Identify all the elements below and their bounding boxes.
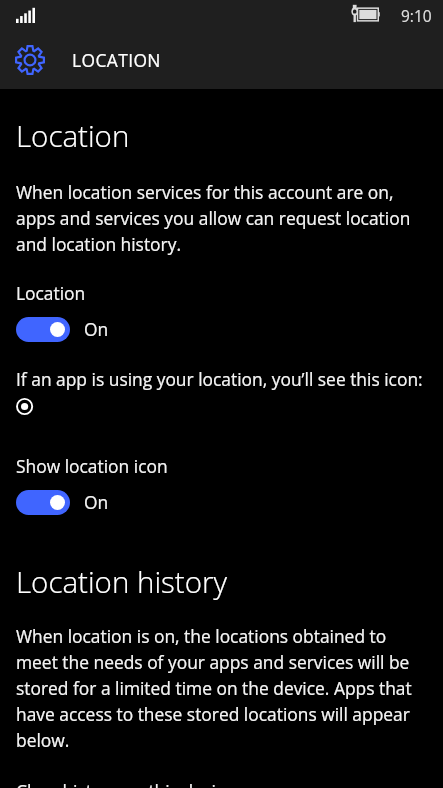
staticText: Show location icon (16, 453, 168, 479)
staticText: Location (16, 280, 86, 306)
staticText: If an app is using your location, you’ll… (16, 366, 423, 392)
button[interactable]: Settings (0, 36, 443, 83)
staticText: Location (16, 115, 130, 155)
other: Battery charging (351, 4, 383, 26)
other: Cellular signal (16, 7, 35, 23)
staticText: On (84, 316, 109, 342)
staticText: Clear history on this device (16, 778, 235, 788)
staticText: LOCATION (72, 48, 161, 72)
staticText: 9:10 (401, 5, 432, 26)
staticText: Location history (16, 561, 227, 601)
button[interactable]: Toggle On (16, 317, 70, 342)
other: Settings (14, 44, 46, 76)
other: Location in use icon (16, 395, 38, 416)
staticText: On (84, 489, 109, 515)
button[interactable]: Toggle On (16, 490, 70, 515)
staticText: When location is on, the locations obtai… (16, 623, 431, 753)
staticText: When location services for this account … (16, 179, 431, 257)
